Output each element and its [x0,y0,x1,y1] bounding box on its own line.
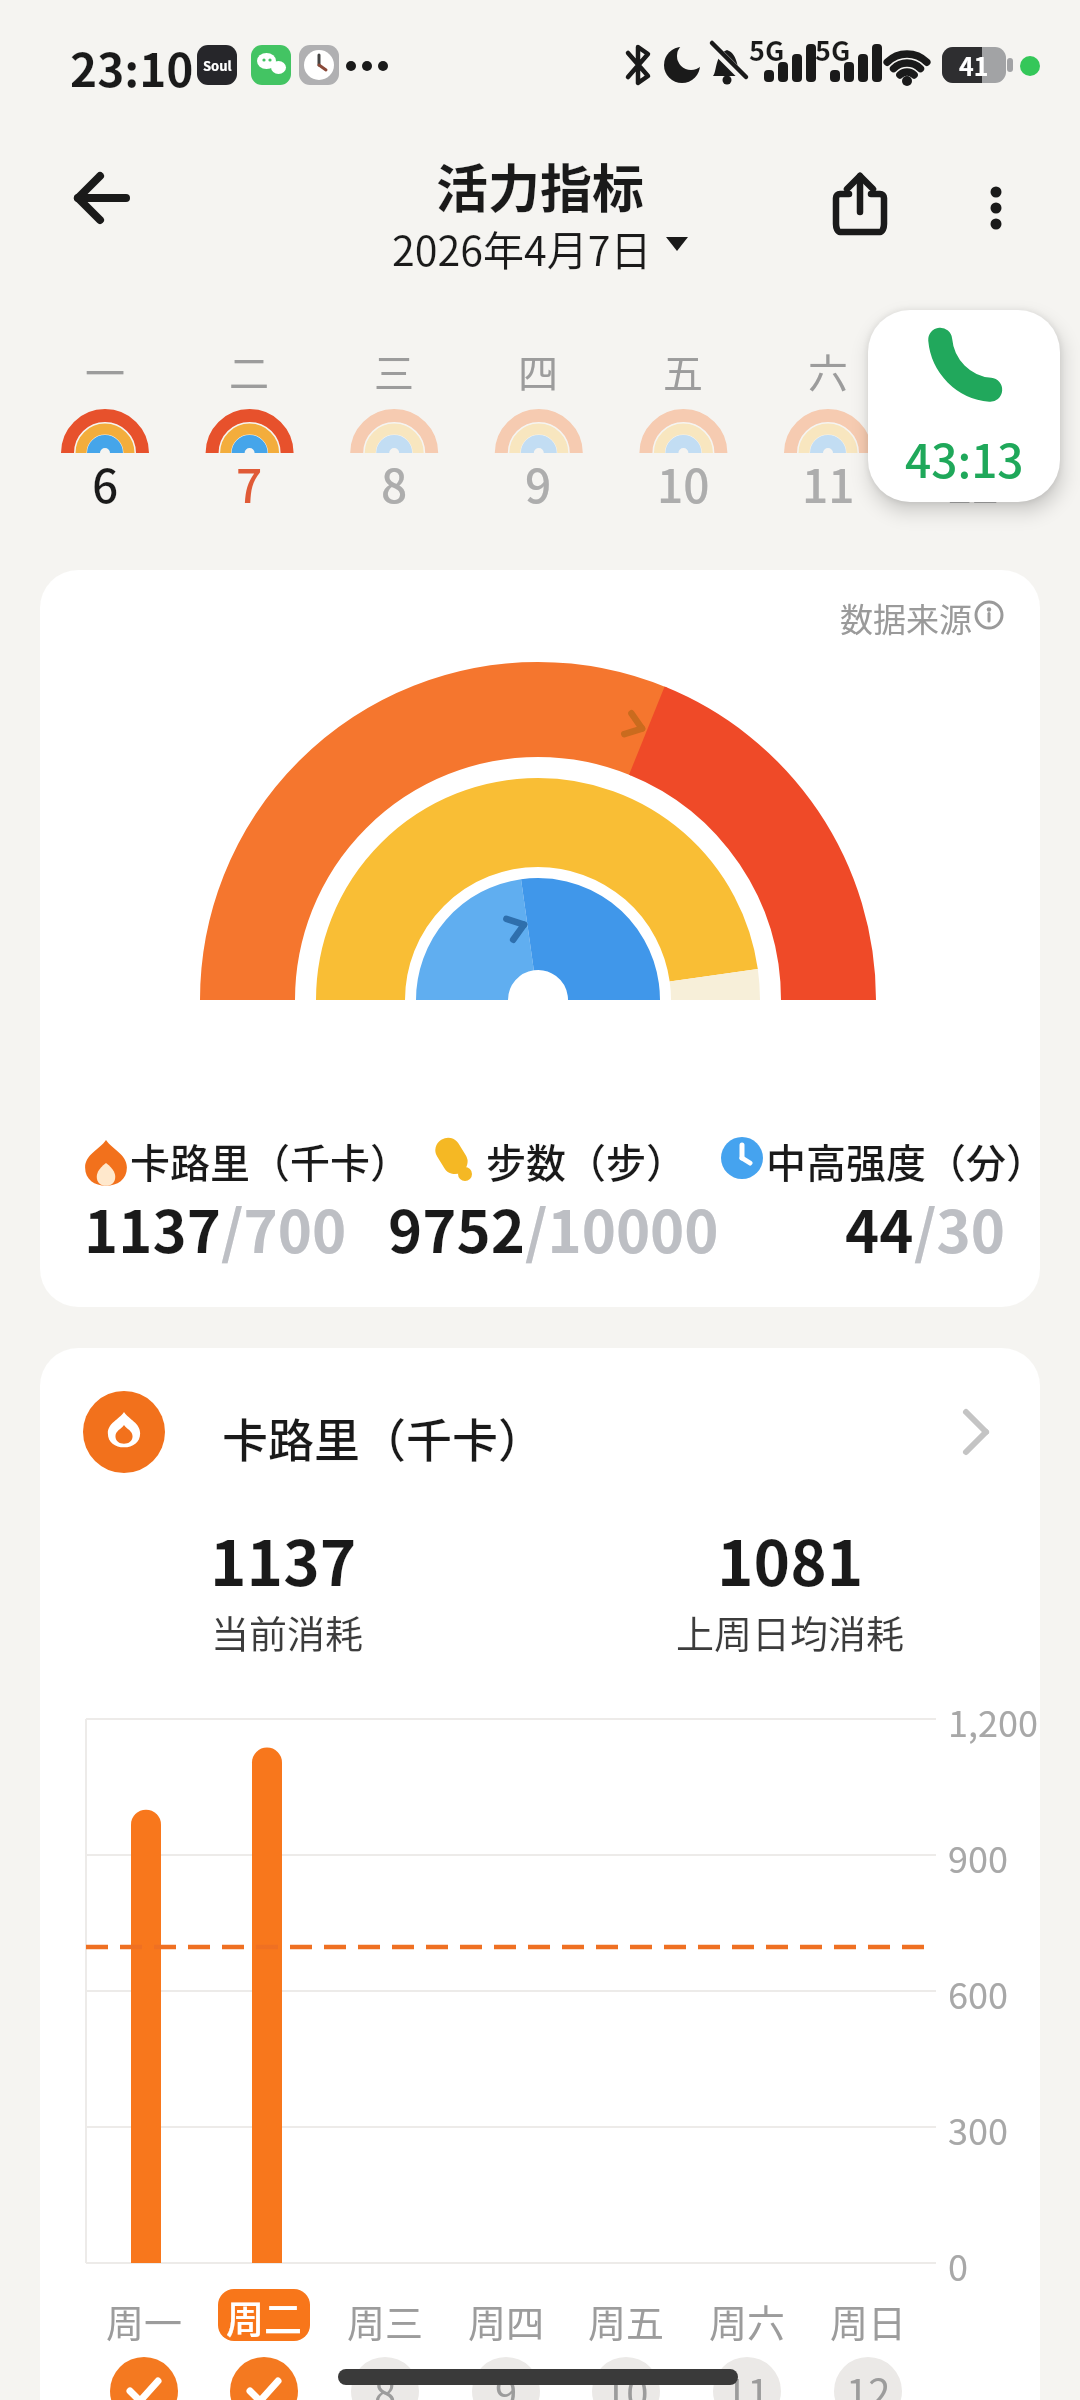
staticText: 五 [663,342,703,400]
staticText: 600 [948,1967,1008,2019]
staticText: 900 [948,1831,1008,1883]
staticText: 43:13 [905,425,1024,492]
button[interactable] [460,2289,552,2341]
button[interactable]: 周二 [218,2289,310,2341]
staticText: 10 [657,450,710,517]
staticText: 44 [845,1186,914,1270]
staticText: 8 [381,450,408,517]
staticText: 5G [749,30,785,69]
staticText: 数据来源 [840,594,972,642]
button[interactable] [194,340,304,520]
button[interactable] [483,340,593,520]
staticText: 300 [948,2103,1008,2155]
button[interactable] [917,340,1027,520]
staticText: 6 [92,450,119,517]
staticText: 9 [525,450,552,517]
staticText: 1137 [84,1186,221,1270]
staticText: 12 [946,450,999,517]
button[interactable] [50,340,160,520]
button[interactable] [773,340,883,520]
staticText: 中高强度（分） [766,1132,1046,1190]
staticText: 当前消耗 [211,1604,364,1659]
staticText: 2026年4月7日 [392,218,652,270]
staticText: 周三 [347,2293,424,2348]
staticText: 卡路里（千卡） [222,1404,544,1471]
button[interactable]: 2026年4月7日 [340,218,740,270]
button[interactable] [822,2289,914,2341]
staticText: 10 [604,2362,649,2400]
staticText: 5G [815,30,851,69]
staticText: Soul [203,56,232,75]
staticText: 11 [725,2362,770,2400]
staticText: 1137 [210,1514,357,1604]
staticText: 周一 [106,2293,183,2348]
staticText: 一 [85,342,125,400]
button[interactable] [580,2289,672,2341]
button[interactable] [339,340,449,520]
button[interactable] [820,168,900,248]
button[interactable] [400,1120,720,1280]
staticText: /10000 [525,1186,719,1270]
staticText: 1081 [717,1514,864,1604]
staticText: 周二 [226,2289,303,2341]
staticText: 周日 [830,2293,907,2348]
staticText: 0 [948,2239,968,2291]
staticText: /700 [221,1186,347,1270]
staticText: 7 [236,450,263,517]
button[interactable] [960,168,1032,248]
button[interactable] [628,340,738,520]
staticText: 12 [846,2362,891,2400]
staticText: 六 [808,342,848,400]
staticText: 上周日均消耗 [676,1604,905,1659]
staticText: 23:10 [70,34,194,101]
staticText: 1,200 [948,1695,1038,1747]
button[interactable] [740,1120,1020,1280]
staticText: 周五 [588,2293,665,2348]
staticText: 8 [374,2362,397,2400]
staticText: 9752 [388,1186,525,1270]
button[interactable] [60,1120,380,1280]
staticText: 二 [229,342,269,400]
button[interactable] [339,2289,431,2341]
staticText: /30 [914,1186,1005,1270]
staticText: 周六 [709,2293,786,2348]
button[interactable] [60,160,140,236]
staticText: 日 [952,342,992,400]
staticText: 周四 [468,2293,545,2348]
staticText: 四 [518,342,558,400]
button[interactable] [98,2289,190,2341]
staticText: 41 [959,47,989,83]
staticText: 步数（步） [486,1132,686,1190]
staticText: 11 [802,450,855,517]
button[interactable]: 43:13 [868,310,1060,502]
button[interactable] [840,584,1020,640]
staticText: 三 [374,342,414,400]
button[interactable] [60,1380,1020,1490]
staticText: 活力指标 [436,148,645,223]
staticText: 9 [495,2362,518,2400]
staticText: 卡路里（千卡） [130,1132,410,1190]
button[interactable] [701,2289,793,2341]
